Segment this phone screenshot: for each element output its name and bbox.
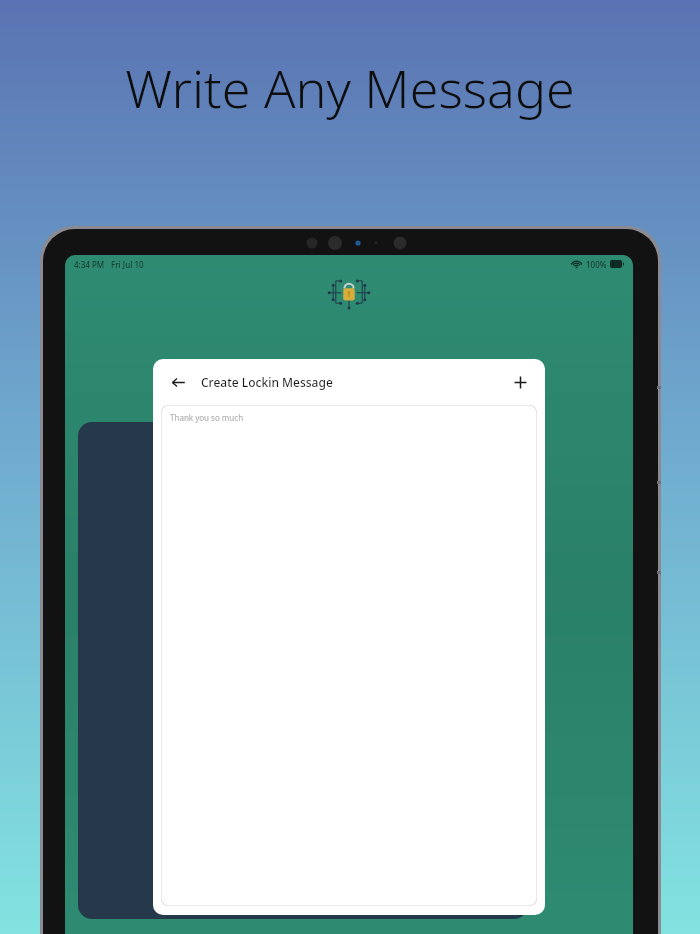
staticText: Create Lockin Message bbox=[201, 374, 333, 390]
staticText: Write Any Message bbox=[125, 52, 575, 123]
staticText: Thank you so much bbox=[170, 412, 244, 423]
staticText: 100% bbox=[586, 259, 607, 270]
button[interactable]: Back bbox=[165, 369, 191, 395]
staticText: Fri Jul 10 bbox=[111, 259, 144, 270]
staticText: 4:34 PM bbox=[74, 259, 105, 270]
button[interactable]: Add bbox=[507, 369, 533, 395]
